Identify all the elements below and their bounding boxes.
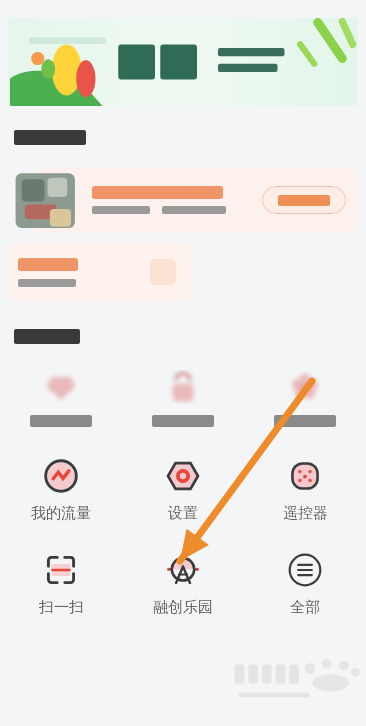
other: 扫一扫 <box>44 553 78 587</box>
button[interactable]: 全部 <box>244 549 366 621</box>
staticText: 遥控器 <box>283 504 328 523</box>
button[interactable]: 设置 <box>122 455 244 527</box>
button[interactable]: Menu item <box>244 366 366 431</box>
other: 融创乐园 <box>166 553 200 587</box>
other: 设置 <box>166 459 200 493</box>
button[interactable]: 我的流量 <box>0 455 122 527</box>
staticText: 融创乐园 <box>153 598 213 617</box>
button[interactable]: 融创乐园 <box>122 549 244 621</box>
staticText: 扫一扫 <box>39 598 84 617</box>
button[interactable] <box>8 161 358 239</box>
button[interactable]: Menu item <box>122 366 244 431</box>
button[interactable]: 扫一扫 <box>0 549 122 621</box>
button[interactable] <box>262 186 346 214</box>
button[interactable] <box>8 18 358 106</box>
button[interactable]: Menu item <box>0 366 122 431</box>
button[interactable] <box>8 243 190 301</box>
staticText: 设置 <box>168 504 198 523</box>
staticText: 全部 <box>290 598 320 617</box>
other: 遥控器 <box>288 459 322 493</box>
other: 全部 <box>288 553 322 587</box>
button[interactable]: 遥控器 <box>244 455 366 527</box>
staticText: 我的流量 <box>31 504 91 523</box>
other: 我的流量 <box>44 459 78 493</box>
